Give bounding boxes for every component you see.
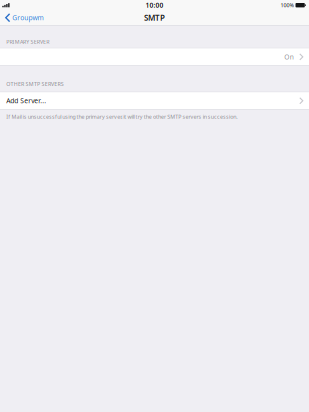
button[interactable]: Add Server... bbox=[0, 92, 309, 109]
staticText: Groupwm bbox=[12, 13, 43, 22]
staticText: 100% bbox=[280, 2, 293, 9]
staticText: On bbox=[284, 52, 294, 61]
staticText: OTHER SMTP SERVERS bbox=[6, 80, 64, 87]
staticText: 10:00 bbox=[145, 1, 163, 10]
button[interactable]: Groupwm bbox=[0, 12, 43, 24]
staticText: SMTP bbox=[144, 12, 165, 23]
button[interactable]: On bbox=[0, 48, 309, 65]
staticText: If Mail is unsuccessful using the primar… bbox=[6, 113, 237, 120]
staticText: PRIMARY SERVER bbox=[6, 38, 49, 45]
staticText: Add Server... bbox=[6, 96, 46, 105]
